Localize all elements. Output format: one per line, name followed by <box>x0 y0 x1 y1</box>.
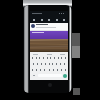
button[interactable]: Key <box>53 56 56 60</box>
button[interactable]: Key <box>35 68 38 72</box>
button[interactable]: Key <box>31 56 34 60</box>
button[interactable]: Home <box>48 83 52 87</box>
button[interactable]: Save draft <box>54 17 60 23</box>
button[interactable]: Key <box>51 62 54 66</box>
button[interactable]: Photo attachment <box>30 39 68 52</box>
button[interactable]: Key <box>40 62 43 66</box>
button[interactable]: Key <box>46 56 49 60</box>
button[interactable]: Key <box>60 68 63 72</box>
button[interactable] <box>30 31 68 39</box>
button[interactable]: Key <box>63 62 66 66</box>
button[interactable]: Key <box>48 62 51 66</box>
button[interactable]: Key <box>55 62 58 66</box>
button[interactable]: Key <box>64 68 67 72</box>
button[interactable]: Key <box>32 62 35 66</box>
button[interactable]: Key <box>49 56 52 60</box>
button[interactable]: Key <box>59 62 62 66</box>
button[interactable]: More options <box>61 17 67 23</box>
button[interactable]: Key <box>44 62 47 66</box>
button[interactable]: Key <box>42 56 45 60</box>
button[interactable] <box>30 23 68 31</box>
button[interactable]: Key <box>38 56 41 60</box>
button[interactable]: Key <box>39 68 42 72</box>
button[interactable]: Key <box>31 68 34 72</box>
button[interactable]: Key <box>43 68 46 72</box>
button[interactable]: Send <box>46 17 52 23</box>
button[interactable]: Key <box>56 68 59 72</box>
button[interactable]: Key <box>57 56 60 60</box>
button[interactable]: Attach file <box>39 17 45 23</box>
button[interactable]: Key <box>64 56 67 60</box>
button[interactable]: Send <box>63 74 67 78</box>
button[interactable]: Key <box>48 68 51 72</box>
button[interactable]: Symbols <box>31 73 37 78</box>
button[interactable]: Key <box>35 56 38 60</box>
button[interactable]: Back <box>31 17 37 23</box>
button[interactable]: Key <box>60 56 63 60</box>
button[interactable]: Key <box>52 68 55 72</box>
button[interactable]: Key <box>36 62 39 66</box>
